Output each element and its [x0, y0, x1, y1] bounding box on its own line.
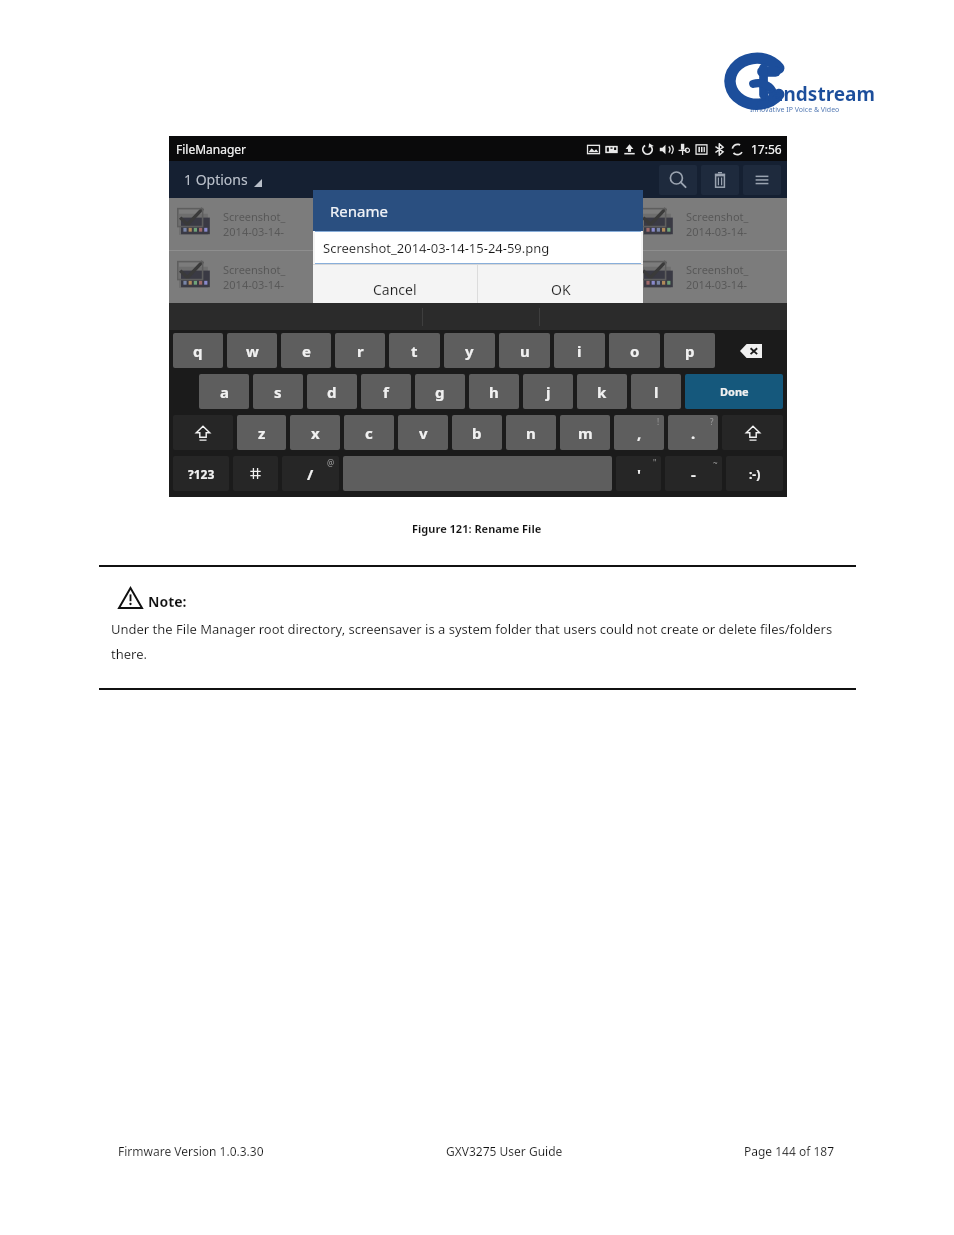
- button[interactable]: Backspace: [719, 333, 783, 368]
- staticText: o: [630, 341, 640, 361]
- staticText: r: [357, 341, 364, 361]
- staticText: 2014-03-14-: [531, 277, 592, 292]
- button[interactable]: t: [389, 333, 440, 368]
- button[interactable]: y: [444, 333, 495, 368]
- button[interactable]: p: [664, 333, 715, 368]
- button[interactable]: Screenshot_: [477, 198, 632, 250]
- staticText: Screenshot_: [377, 209, 440, 224]
- staticText: :-): [749, 466, 761, 482]
- staticText: 2014-03-14-: [686, 277, 747, 292]
- staticText: j: [546, 382, 551, 402]
- button[interactable]: Input method: [233, 456, 278, 491]
- button[interactable]: Cancel: [313, 265, 477, 314]
- staticText: Figure 121: Rename File: [412, 521, 542, 536]
- button[interactable]: :-): [726, 456, 783, 491]
- staticText: Screenshot_: [686, 262, 749, 277]
- button[interactable]: w: [227, 333, 277, 368]
- button[interactable]: Search: [659, 165, 697, 195]
- button[interactable]: b: [452, 415, 502, 450]
- button[interactable]: c: [344, 415, 394, 450]
- staticText: v: [419, 423, 428, 443]
- button[interactable]: /: [282, 456, 339, 491]
- button[interactable]: h: [469, 374, 519, 409]
- staticText: ,: [637, 423, 642, 443]
- staticText: Screenshot_: [223, 209, 286, 224]
- staticText: Cancel: [373, 280, 417, 299]
- button[interactable]: Screenshot_: [323, 198, 477, 250]
- button[interactable]: d: [307, 374, 357, 409]
- staticText: Innovative IP Voice & Video: [750, 105, 840, 115]
- staticText: -: [691, 464, 696, 484]
- staticText: p: [685, 341, 695, 361]
- button[interactable]: l: [631, 374, 681, 409]
- staticText: 2014-03-14-: [531, 224, 592, 239]
- button[interactable]: OK: [478, 265, 643, 314]
- staticText: Screenshot_: [377, 262, 440, 277]
- button[interactable]: Screenshot_: [169, 198, 323, 250]
- button[interactable]: Shift: [173, 415, 233, 450]
- button[interactable]: 1 Options: [180, 166, 266, 193]
- button[interactable]: v: [398, 415, 448, 450]
- button[interactable]: j: [523, 374, 573, 409]
- staticText: s: [274, 382, 282, 402]
- button[interactable]: i: [554, 333, 605, 368]
- button[interactable]: Shift: [722, 415, 783, 450]
- staticText: 2014-03-14-: [377, 277, 438, 292]
- staticText: Under the File Manager root directory, s…: [111, 620, 855, 662]
- button[interactable]: q: [173, 333, 223, 368]
- staticText: .: [691, 423, 696, 443]
- staticText: Screenshot_: [223, 262, 286, 277]
- button[interactable]: Screenshot_: [632, 198, 787, 250]
- button[interactable]: .: [668, 415, 718, 450]
- staticText: 2014-03-14-: [223, 224, 284, 239]
- staticText: @: [327, 457, 335, 468]
- button[interactable]: Screenshot_: [323, 251, 477, 303]
- button[interactable]: Screenshot_: [477, 251, 632, 303]
- staticText: 1 Options: [184, 170, 248, 189]
- staticText: d: [327, 382, 337, 402]
- button[interactable]: Screenshot_: [632, 251, 787, 303]
- staticText: b: [472, 423, 482, 443]
- button[interactable]: x: [290, 415, 340, 450]
- staticText: k: [597, 382, 607, 402]
- staticText: h: [489, 382, 499, 402]
- staticText: m: [578, 423, 593, 443]
- button[interactable]: g: [415, 374, 465, 409]
- button[interactable]: f: [361, 374, 411, 409]
- staticText: ?: [710, 416, 714, 427]
- button[interactable]: ,: [614, 415, 664, 450]
- button[interactable]: s: [253, 374, 303, 409]
- staticText: q: [193, 341, 203, 361]
- staticText: Page 144 of 187: [744, 1143, 835, 1159]
- button[interactable]: a: [199, 374, 249, 409]
- button[interactable]: Screenshot_: [169, 251, 323, 303]
- button[interactable]: r: [335, 333, 385, 368]
- button[interactable]: n: [506, 415, 556, 450]
- button[interactable]: k: [577, 374, 627, 409]
- staticText: Done: [720, 384, 749, 399]
- button[interactable]: Screenshot_2014-03-14-15-24-59.png: [315, 231, 641, 264]
- staticText: GXV3275 User Guide: [446, 1143, 563, 1159]
- staticText: t: [411, 341, 418, 361]
- staticText: ?123: [188, 466, 215, 482]
- staticText: ": [653, 457, 657, 468]
- staticText: Firmware Version 1.0.3.30: [118, 1143, 264, 1159]
- button[interactable]: m: [560, 415, 610, 450]
- button[interactable]: ': [616, 456, 661, 491]
- button[interactable]: Menu: [743, 165, 781, 195]
- button[interactable]: ?123: [173, 456, 229, 491]
- staticText: Screenshot_2014-03-14-15-24-59.png: [323, 239, 550, 257]
- button[interactable]: -: [665, 456, 722, 491]
- button[interactable]: o: [609, 333, 660, 368]
- staticText: Rename: [330, 201, 388, 221]
- staticText: Note:: [148, 592, 187, 611]
- button[interactable]: u: [499, 333, 550, 368]
- staticText: 2014-03-14-: [223, 277, 284, 292]
- button[interactable]: Delete: [701, 165, 739, 195]
- staticText: c: [365, 423, 373, 443]
- button[interactable]: Done: [685, 374, 783, 409]
- button[interactable]: e: [281, 333, 331, 368]
- button[interactable]: z: [237, 415, 286, 450]
